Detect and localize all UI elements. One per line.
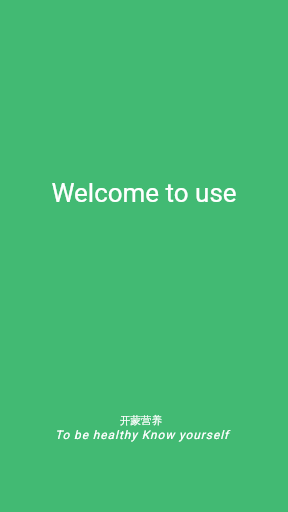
staticText: Welcome to use: [0, 178, 288, 208]
staticText: 开蒙营养: [0, 414, 285, 427]
staticText: To be healthy Know yourself: [0, 428, 286, 442]
